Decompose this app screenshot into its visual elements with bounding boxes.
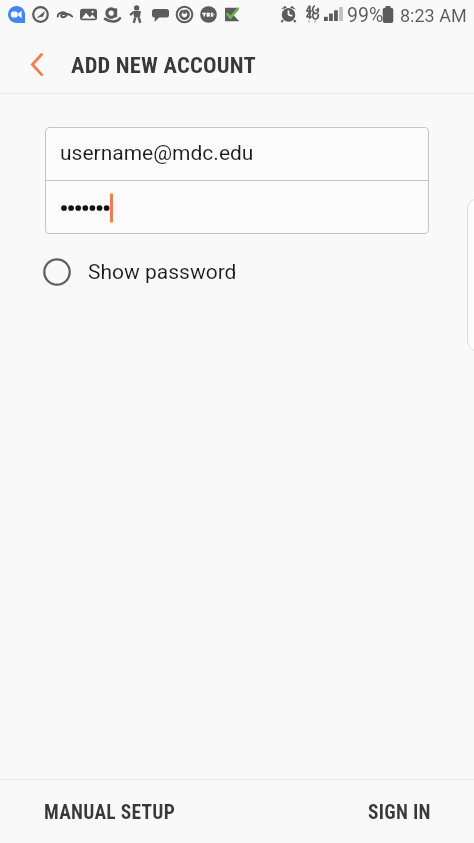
staticText: username@mdc.edu (60, 141, 254, 166)
staticText: 99% (347, 4, 384, 27)
button[interactable]: Back (0, 30, 56, 93)
button[interactable]: MANUAL SETUP (25, 781, 195, 843)
button[interactable]: username@mdc.edu (45, 127, 429, 180)
staticText: MANUAL SETUP (44, 801, 176, 824)
button[interactable]: Show password (38, 254, 237, 290)
staticText: ADD NEW ACCOUNT (71, 52, 256, 78)
staticText: 8:23 AM (400, 5, 467, 26)
button[interactable]: SIGN IN (347, 781, 451, 843)
staticText: Show password (88, 260, 237, 285)
button[interactable] (45, 181, 429, 234)
staticText: SIGN IN (368, 801, 431, 824)
